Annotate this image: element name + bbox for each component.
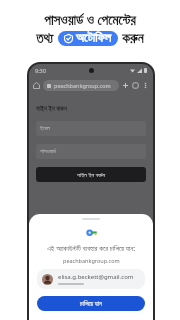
staticText: সাইন ইন করুন — [77, 171, 106, 179]
button[interactable]: Tabs — [132, 82, 139, 89]
staticText: চালিয়ে যান — [80, 299, 102, 308]
button[interactable]: পাসওয়ার্ড — [36, 144, 146, 159]
staticText: পাসওয়ার্ড ও পেমেন্টের — [44, 11, 136, 29]
staticText: অটোফিল — [76, 32, 112, 45]
staticText: elisa.g.beckett@gmail.com — [58, 273, 134, 281]
button[interactable]: elisa.g.beckett@gmail.com — [37, 269, 145, 289]
staticText: ইমেল — [40, 126, 50, 132]
staticText: সাইন ইন করুন — [36, 104, 67, 113]
button[interactable]: Home — [33, 82, 40, 89]
staticText: তথ্য — [36, 32, 54, 46]
button[interactable]: ইমেল — [36, 121, 146, 136]
staticText: এই অ্যাকাউন্টটি ব্যবহার করে চালিয়ে যান: — [47, 244, 136, 254]
staticText: করুন — [122, 32, 144, 46]
staticText: পাসওয়ার্ড — [40, 149, 56, 155]
button[interactable]: peachbankgroup.com — [43, 80, 119, 91]
staticText: peachbankgroup.com — [63, 257, 120, 264]
button[interactable]: চালিয়ে যান — [37, 296, 145, 311]
button[interactable]: New tab — [122, 82, 129, 89]
button[interactable]: সাইন ইন করুন — [36, 167, 146, 182]
button[interactable]: More options — [142, 82, 149, 89]
button[interactable]: অটোফিল — [58, 31, 118, 46]
staticText: 9:30 — [35, 67, 46, 74]
staticText: peachbankgroup.com — [54, 82, 111, 89]
